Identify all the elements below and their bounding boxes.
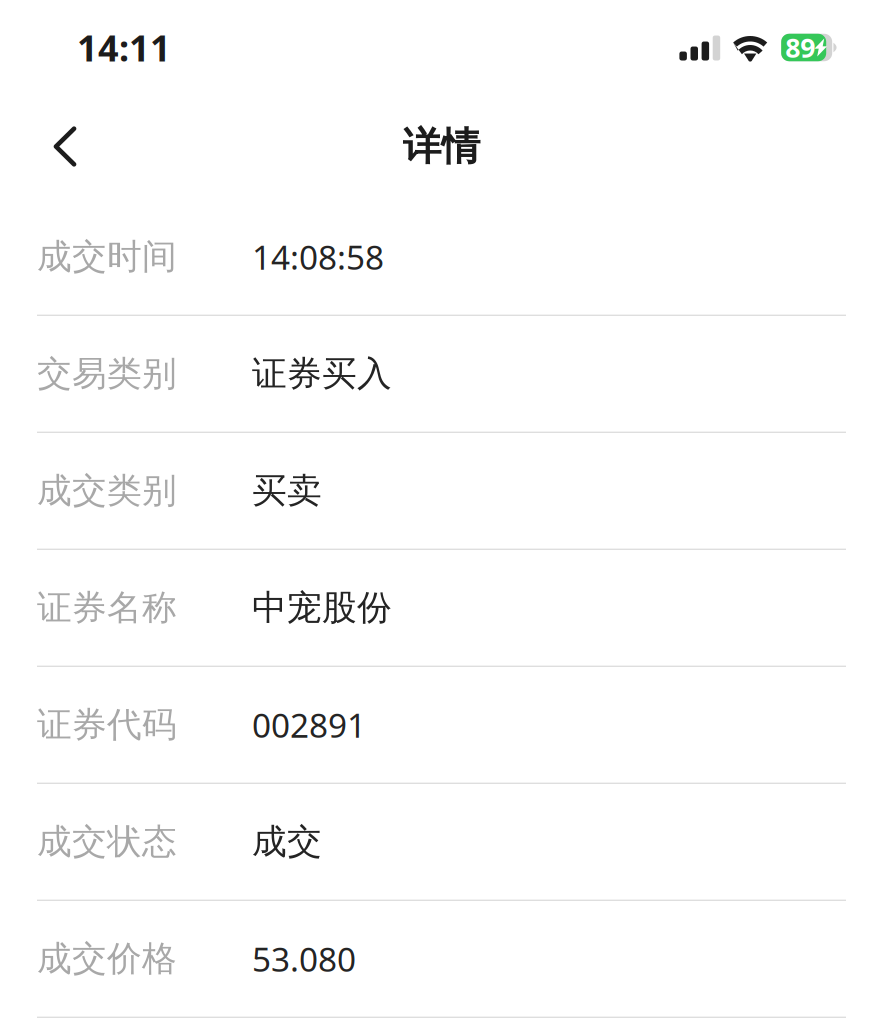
staticText: 53.080 xyxy=(252,937,356,981)
staticText: 中宠股份 xyxy=(252,586,392,629)
staticText: 89 xyxy=(785,30,815,65)
staticText: 成交价格 xyxy=(37,937,177,980)
staticText: 成交类别 xyxy=(37,469,177,512)
staticText: 成交时间 xyxy=(37,235,177,278)
staticText: 详情 xyxy=(402,123,480,170)
staticText: 14:11 xyxy=(77,24,171,71)
staticText: 成交状态 xyxy=(37,820,177,863)
staticText: 买卖 xyxy=(252,469,322,512)
button[interactable]: Back xyxy=(28,108,102,184)
staticText: 证券买入 xyxy=(252,352,392,395)
staticText: 002891 xyxy=(252,703,366,747)
staticText: 14:08:58 xyxy=(252,235,384,279)
staticText: 交易类别 xyxy=(37,352,177,395)
staticText: 证券名称 xyxy=(37,586,177,629)
staticText: 证券代码 xyxy=(37,703,177,746)
staticText: 成交 xyxy=(252,820,322,863)
